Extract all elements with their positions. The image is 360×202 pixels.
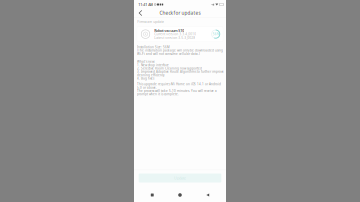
staticText: 2. Selective Room Cleaning now supported	[137, 66, 202, 70]
staticText: Latest version 3.5.3_0028	[154, 36, 195, 40]
staticText: (The installation package will only be d…	[137, 48, 223, 52]
staticText: Current version 3.3.4_0010	[154, 32, 196, 36]
staticText: 11:41 AM	[138, 2, 153, 7]
staticText: Update	[174, 175, 186, 181]
button[interactable]: Back	[198, 190, 217, 199]
staticText: 5.0 or above.	[137, 85, 157, 89]
button[interactable]: Back	[136, 9, 145, 17]
staticText: The process will take 5-10 minutes. You …	[137, 89, 217, 93]
staticText: This upgrade requires Mi Home on iOS 14.…	[137, 82, 221, 86]
staticText: Check for updates	[159, 10, 200, 16]
staticText: What's new:	[137, 60, 155, 64]
staticText: 56%	[213, 32, 219, 36]
staticText: Robot vacuum S10	[154, 28, 184, 33]
button[interactable]: Recent apps	[143, 190, 162, 199]
staticText: prompt when it is complete.	[137, 92, 179, 96]
staticText: 1. New shop interface	[137, 63, 169, 67]
staticText: 3. Improved Adaptive Route Algorithms to…	[137, 70, 224, 74]
staticText: cleaning efficiency	[137, 73, 164, 77]
staticText: Firmware update	[137, 20, 164, 24]
staticText: Installation Size: 56M	[137, 45, 170, 49]
staticText: Wi-Fi and will not consume cellular data…	[137, 52, 200, 56]
staticText: 4. Bug fixes	[137, 76, 154, 80]
button[interactable]: Home	[170, 190, 189, 199]
